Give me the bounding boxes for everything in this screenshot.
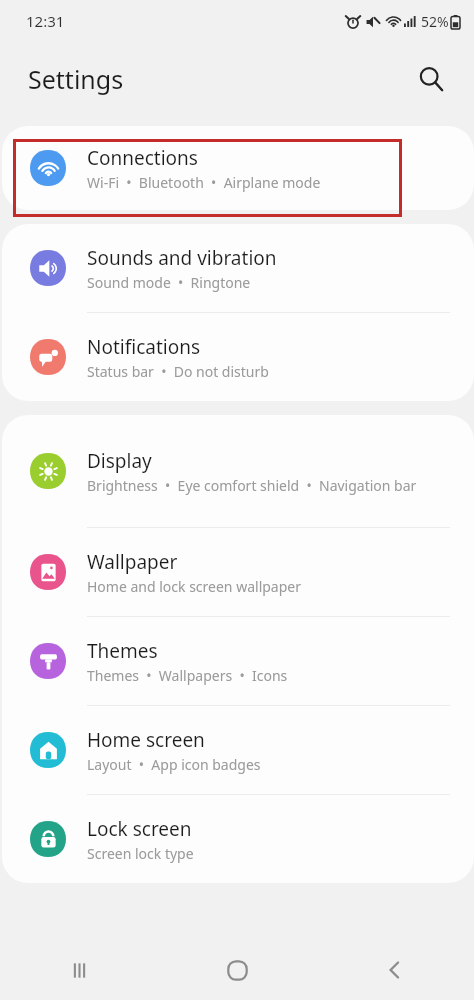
staticText: Lock screen [87, 816, 192, 842]
staticText: Connections [87, 145, 198, 171]
button[interactable]: Back [316, 940, 474, 1000]
staticText: Display [87, 448, 152, 474]
button[interactable]: Recents [0, 940, 158, 1000]
staticText: Wallpaper [87, 549, 178, 575]
button[interactable]: Sounds and vibration [2, 224, 474, 312]
staticText: Home screen [87, 727, 205, 753]
staticText: Home and lock screen wallpaper [87, 577, 301, 596]
staticText: Wi-Fi • Bluetooth • Airplane mode [87, 173, 321, 192]
button[interactable]: Home [158, 940, 316, 1000]
button[interactable]: Connections [2, 126, 474, 210]
button[interactable]: Lock screen [2, 795, 474, 883]
staticText: Themes [87, 638, 158, 664]
button[interactable]: Notifications [2, 313, 474, 401]
staticText: 12:31 [26, 11, 65, 31]
button[interactable]: Themes [2, 617, 474, 705]
staticText: Screen lock type [87, 844, 194, 863]
staticText: Themes • Wallpapers • Icons [87, 666, 288, 685]
button[interactable]: Home screen [2, 706, 474, 794]
staticText: Notifications [87, 334, 201, 360]
staticText: Brightness • Eye comfort shield • Naviga… [87, 476, 417, 495]
staticText: Settings [28, 62, 124, 96]
staticText: Sound mode • Ringtone [87, 273, 251, 292]
staticText: Status bar • Do not disturb [87, 362, 269, 381]
button[interactable]: Wallpaper [2, 528, 474, 616]
staticText: Layout • App icon badges [87, 755, 261, 774]
staticText: 52% [421, 12, 449, 31]
staticText: Sounds and vibration [87, 245, 277, 271]
button[interactable]: Display [2, 415, 474, 527]
button[interactable]: Search [408, 56, 454, 102]
